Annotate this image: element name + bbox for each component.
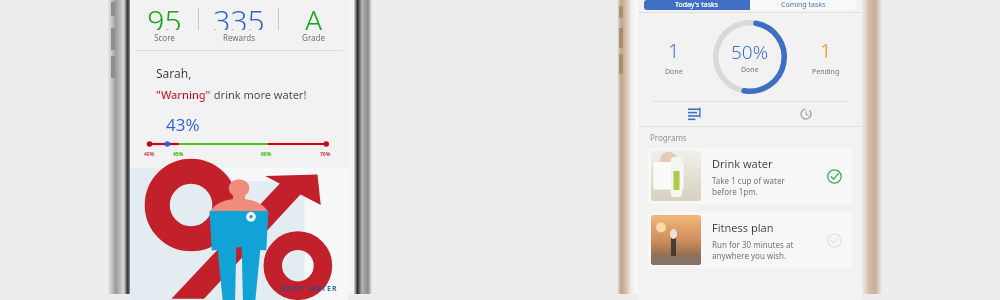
staticText: 40% — [144, 151, 155, 158]
staticText: 43% — [166, 113, 200, 136]
button[interactable]: Fitness plan — [648, 212, 852, 268]
staticText: 1 — [820, 37, 832, 64]
staticText: Run for 30 minutes at — [712, 239, 794, 250]
staticText: anywhere you wish. — [712, 250, 787, 261]
staticText: Score — [154, 32, 175, 43]
button[interactable]: Completed — [816, 148, 852, 204]
staticText: before 1pm. — [712, 186, 758, 197]
button[interactable]: History — [750, 102, 862, 126]
staticText: Programs — [650, 132, 687, 143]
staticText: 70% — [320, 151, 331, 158]
staticText: Fitness plan — [712, 220, 774, 235]
staticText: 60% — [261, 151, 272, 158]
staticText: 95 — [147, 0, 182, 30]
staticText: 1 — [668, 37, 680, 64]
staticText: Take 1 cup of water — [712, 175, 785, 186]
button[interactable]: Mark complete — [816, 212, 852, 268]
button[interactable]: Drink water — [648, 148, 852, 204]
staticText: 50% — [731, 39, 769, 65]
staticText: "Warning" — [156, 87, 211, 102]
staticText: 45% — [173, 151, 184, 158]
staticText: Done — [665, 67, 683, 77]
staticText: Today's tasks — [675, 0, 719, 10]
staticText: drink more water! — [211, 87, 307, 102]
staticText: Coming tasks — [781, 0, 826, 10]
button[interactable]: List view — [638, 102, 750, 126]
staticText: Drink water — [712, 156, 773, 171]
button[interactable]: Coming tasks — [750, 0, 856, 10]
staticText: BODY WATER — [281, 284, 338, 294]
staticText: A — [304, 0, 323, 30]
staticText: Sarah, — [156, 65, 192, 81]
staticText: Done — [741, 65, 759, 75]
staticText: Grade — [302, 32, 325, 43]
staticText: 335 — [213, 0, 265, 30]
button[interactable]: Today's tasks — [644, 0, 750, 10]
staticText: Rewards — [223, 32, 255, 43]
staticText: Pending — [812, 67, 840, 77]
